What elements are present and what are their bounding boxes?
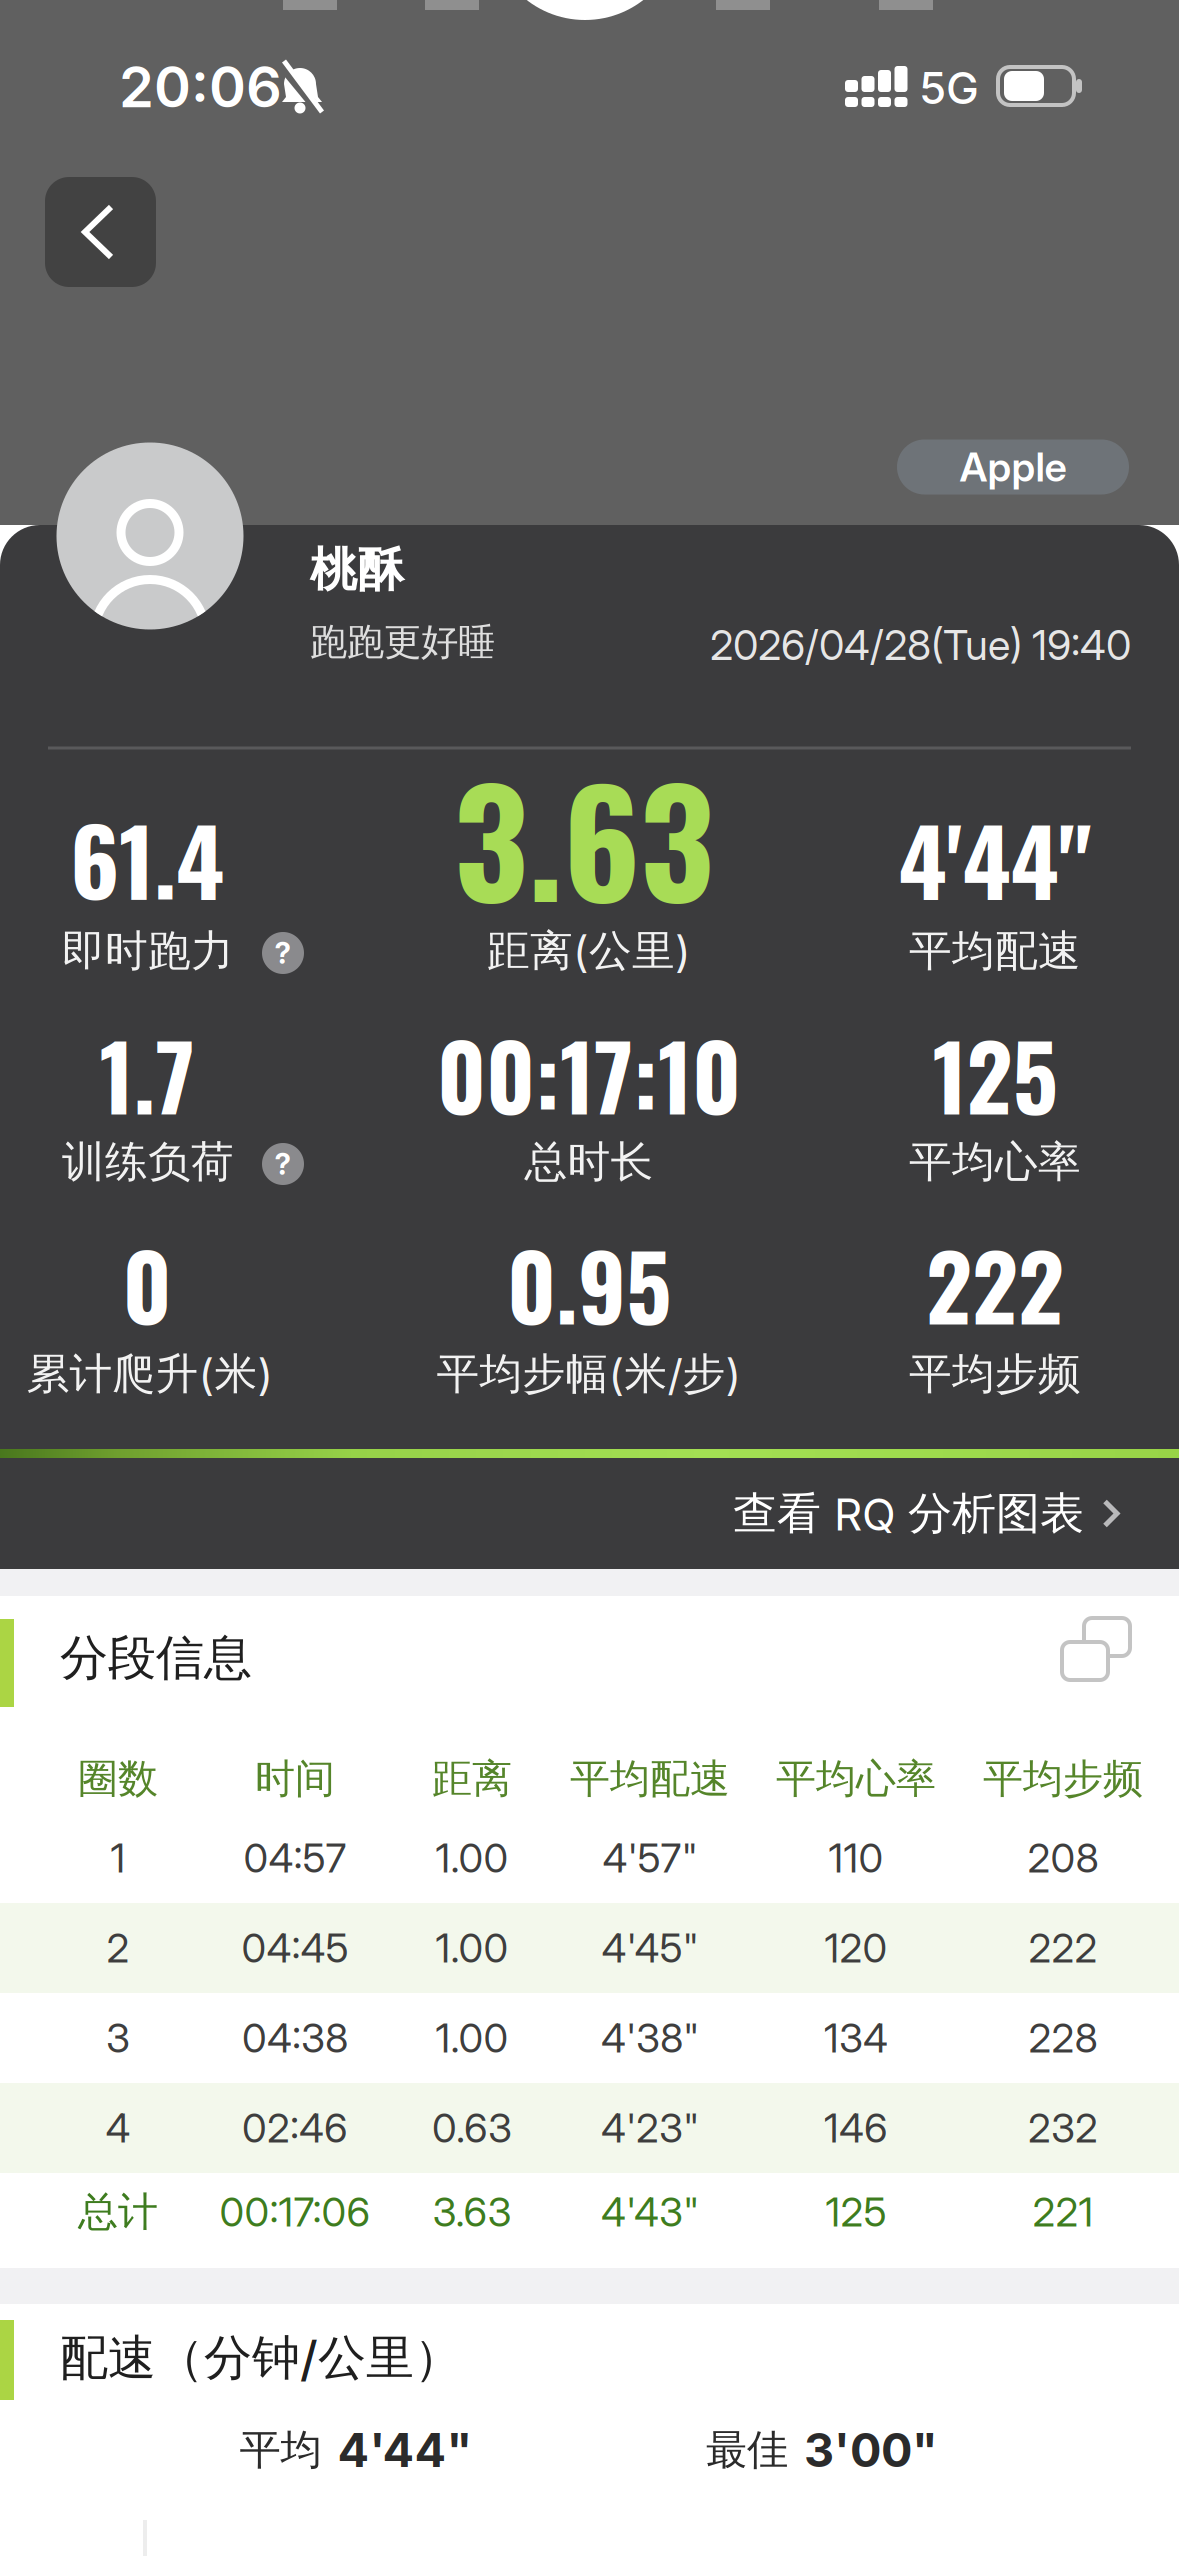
staticText: 04:57	[243, 1834, 346, 1882]
staticText: 平均	[239, 2425, 321, 2475]
staticText: 平均配速	[909, 925, 1081, 977]
staticText: 3	[106, 2014, 130, 2062]
staticText: 1.00	[435, 1834, 508, 1882]
staticText: 208	[1027, 1834, 1098, 1882]
staticText: 即时跑力	[62, 925, 234, 977]
staticText: 距离(公里)	[487, 925, 691, 977]
button[interactable]: Apple	[897, 439, 1129, 494]
staticText: 训练负荷	[62, 1136, 234, 1188]
staticText: 平均步频	[983, 1754, 1143, 1803]
staticText: 125	[932, 1008, 1057, 1140]
staticText: 查看 RQ 分析图表	[733, 1486, 1084, 1540]
staticText: 120	[824, 1924, 887, 1972]
staticText: 00:17:10	[437, 1008, 741, 1140]
staticText: 61.4	[70, 790, 224, 926]
staticText: 平均心率	[776, 1754, 936, 1803]
staticText: 4	[105, 2104, 130, 2152]
staticText: 221	[1032, 2188, 1093, 2236]
staticText: 125	[825, 2188, 886, 2236]
staticText: 跑跑更好睡	[310, 619, 495, 665]
staticText: 分段信息	[60, 1628, 252, 1687]
staticText: 3.63	[454, 730, 714, 944]
staticText: 4'23"	[601, 2104, 699, 2152]
staticText: 总计	[78, 2187, 158, 2236]
button[interactable]: 查看 RQ 分析图表	[0, 1458, 1179, 1569]
button[interactable]: Back	[45, 177, 156, 287]
staticText: 146	[824, 2104, 888, 2152]
staticText: 平均心率	[909, 1136, 1081, 1188]
staticText: 3'00"	[804, 2422, 938, 2478]
staticText: 0.95	[507, 1218, 671, 1350]
staticText: 3.63	[432, 2188, 511, 2236]
staticText: 4'44"	[337, 2422, 472, 2478]
staticText: 总时长	[524, 1136, 653, 1188]
staticText: 4'44"	[898, 790, 1091, 926]
staticText: 1.00	[435, 2014, 508, 2062]
staticText: 2	[106, 1924, 129, 1972]
staticText: 4'43"	[601, 2188, 699, 2236]
staticText: 20:06	[119, 54, 282, 120]
staticText: 5G	[919, 62, 979, 114]
staticText: 配速（分钟/公里）	[60, 2328, 462, 2387]
staticText: ?	[274, 936, 291, 970]
button[interactable]: Help	[262, 1143, 304, 1185]
staticText: 1.7	[99, 1008, 194, 1140]
staticText: 4'38"	[601, 2014, 699, 2062]
staticText: 4'57"	[602, 1834, 697, 1882]
staticText: 0.63	[432, 2104, 512, 2152]
staticText: 04:45	[241, 1924, 348, 1972]
staticText: 222	[926, 1218, 1064, 1350]
staticText: 1	[110, 1834, 125, 1882]
staticText: 232	[1028, 2104, 1098, 2152]
staticText: Apple	[959, 443, 1066, 491]
staticText: 134	[824, 2014, 888, 2062]
staticText: 228	[1028, 2014, 1097, 2062]
staticText: 距离	[432, 1754, 512, 1803]
staticText: 平均步幅(米/步)	[436, 1348, 741, 1400]
staticText: 1.00	[435, 1924, 508, 1972]
staticText: 0	[122, 1218, 171, 1350]
staticText: 110	[828, 1834, 883, 1882]
staticText: 04:38	[242, 2014, 348, 2062]
staticText: 平均步频	[909, 1348, 1081, 1400]
staticText: 2026/04/28(Tue) 19:40	[710, 621, 1131, 669]
staticText: 4'45"	[601, 1924, 698, 1972]
staticText: 02:46	[242, 2104, 348, 2152]
staticText: 桃酥	[310, 541, 404, 599]
staticText: 累计爬升(米)	[26, 1348, 273, 1400]
staticText: 222	[1028, 1924, 1097, 1972]
button[interactable]: Copy	[1051, 1607, 1141, 1691]
staticText: 平均配速	[570, 1754, 730, 1803]
staticText: 00:17:06	[219, 2188, 370, 2236]
staticText: 最佳	[706, 2425, 788, 2475]
staticText: ?	[274, 1147, 291, 1181]
button[interactable]: Help	[262, 932, 304, 974]
staticText: 圈数	[78, 1754, 158, 1803]
staticText: 时间	[255, 1754, 335, 1803]
